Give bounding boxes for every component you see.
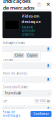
button[interactable]: Editar CEP xyxy=(33,99,51,103)
button[interactable]: Vídeo em destaque xyxy=(2,11,51,38)
button[interactable] xyxy=(2,63,51,69)
button[interactable]: Colar xyxy=(13,53,24,58)
staticText: Passo de modificação xyxy=(2,110,20,118)
staticText: 00 000 xyxy=(35,99,46,103)
button[interactable] xyxy=(2,46,51,52)
staticText: ✕ xyxy=(46,1,50,8)
button[interactable]: Copiar xyxy=(26,53,39,58)
button[interactable]: Passo de modificação xyxy=(2,109,20,119)
staticText: Colar xyxy=(15,54,23,57)
staticText: Reprodução xyxy=(4,91,21,95)
staticText: Copiar xyxy=(27,54,37,57)
staticText: Rua, nº, bairro xyxy=(4,107,24,110)
button[interactable]: Fechar xyxy=(45,1,51,7)
button[interactable]: Confirmar xyxy=(30,111,51,117)
button[interactable]: Rua, nº, bairro xyxy=(2,106,51,112)
staticText: Indicações de mercados xyxy=(3,0,35,12)
staticText: Conteúdo/Cidade xyxy=(2,85,28,89)
button[interactable] xyxy=(2,76,51,82)
staticText: ? xyxy=(38,2,40,7)
staticText: Título do anúncio xyxy=(2,72,27,75)
staticText: Confirmar xyxy=(33,112,48,116)
staticText: Vídeo em destaque xyxy=(21,13,40,24)
button[interactable]: Ajuda xyxy=(37,2,41,6)
staticText: Assista ao conteúdo completo xyxy=(21,25,35,36)
staticText: Indicações locais xyxy=(2,41,24,45)
button[interactable]: Reprodução xyxy=(2,90,51,96)
staticText: CEP xyxy=(2,99,7,103)
staticText: Contato xyxy=(2,58,13,61)
staticText: ⌄ xyxy=(47,92,49,95)
